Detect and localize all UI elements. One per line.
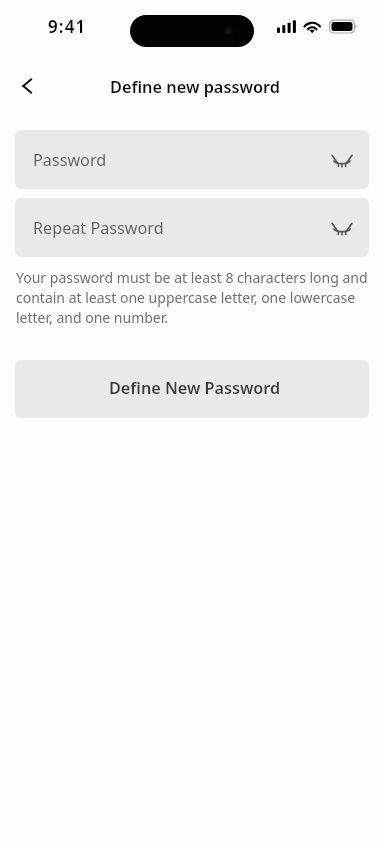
staticText: Your password must be at least 8 charact… bbox=[16, 268, 368, 327]
button[interactable]: Password bbox=[15, 130, 369, 189]
staticText: Define New Password bbox=[109, 377, 281, 399]
staticText: Password bbox=[33, 149, 107, 171]
button[interactable]: Back bbox=[8, 66, 48, 106]
button[interactable]: Repeat Password bbox=[15, 198, 369, 257]
staticText: Repeat Password bbox=[33, 217, 164, 239]
button[interactable]: Show password bbox=[322, 140, 362, 180]
staticText: 9:41 bbox=[48, 15, 87, 38]
button[interactable]: Define New Password bbox=[15, 360, 369, 418]
button[interactable]: Show password bbox=[322, 208, 362, 248]
staticText: Define new password bbox=[110, 76, 280, 98]
